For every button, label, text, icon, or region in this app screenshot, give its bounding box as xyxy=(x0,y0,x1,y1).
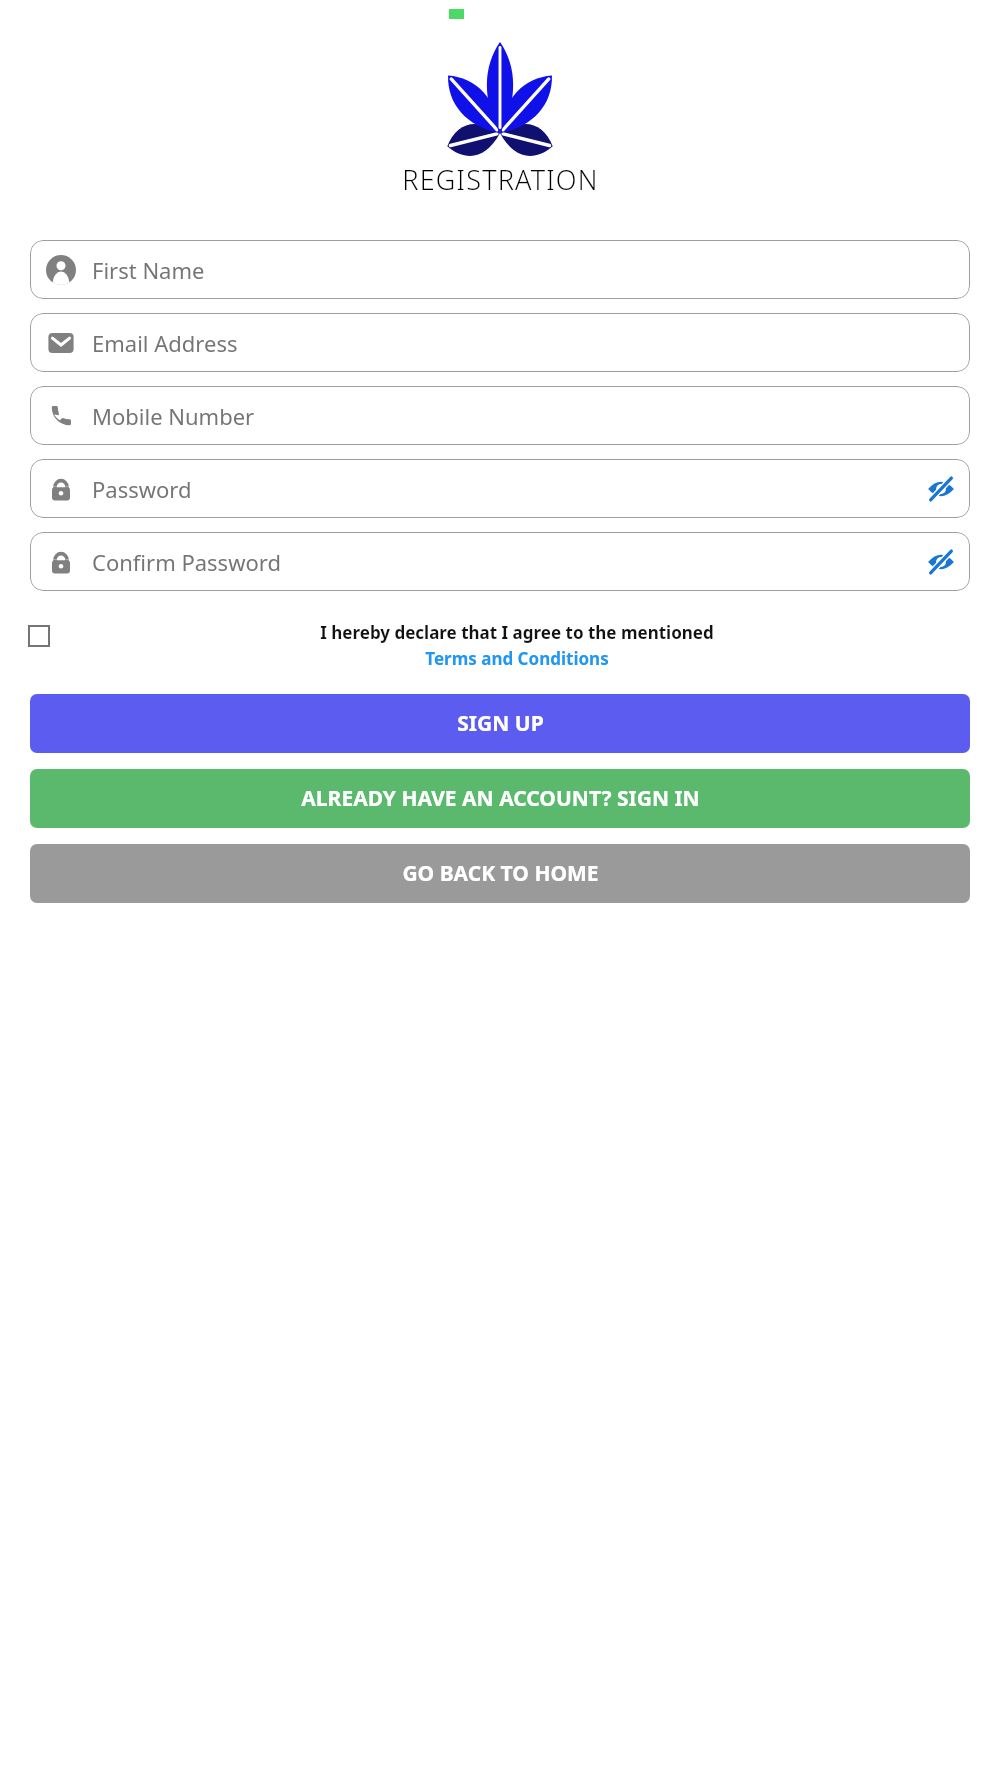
button[interactable]: Agree to terms checkbox xyxy=(28,621,972,670)
staticText: I hereby declare that I agree to the men… xyxy=(320,621,714,644)
button[interactable]: Mobile Number xyxy=(30,386,970,445)
button[interactable]: Toggle password visibility xyxy=(918,466,964,512)
staticText: ALREADY HAVE AN ACCOUNT? SIGN IN xyxy=(301,784,700,813)
staticText: First Name xyxy=(92,255,954,285)
button[interactable]: ALREADY HAVE AN ACCOUNT? SIGN IN xyxy=(30,769,970,828)
staticText: REGISTRATION xyxy=(402,161,599,198)
staticText: Confirm Password xyxy=(92,547,918,577)
button[interactable]: GO BACK TO HOME xyxy=(30,844,970,903)
staticText: GO BACK TO HOME xyxy=(402,859,599,888)
other: Agree to terms checkbox xyxy=(28,625,50,647)
button[interactable]: SIGN UP xyxy=(30,694,970,753)
button[interactable]: Confirm Password xyxy=(30,532,970,591)
button[interactable]: Email Address xyxy=(30,313,970,372)
staticText: Password xyxy=(92,474,918,504)
staticText: SIGN UP xyxy=(457,709,544,738)
button[interactable]: Password xyxy=(30,459,970,518)
button[interactable]: Toggle password visibility xyxy=(918,539,964,585)
button[interactable]: First Name xyxy=(30,240,970,299)
staticText: Mobile Number xyxy=(92,401,954,431)
staticText: Email Address xyxy=(92,328,954,358)
button[interactable]: Terms and Conditions xyxy=(425,647,609,670)
